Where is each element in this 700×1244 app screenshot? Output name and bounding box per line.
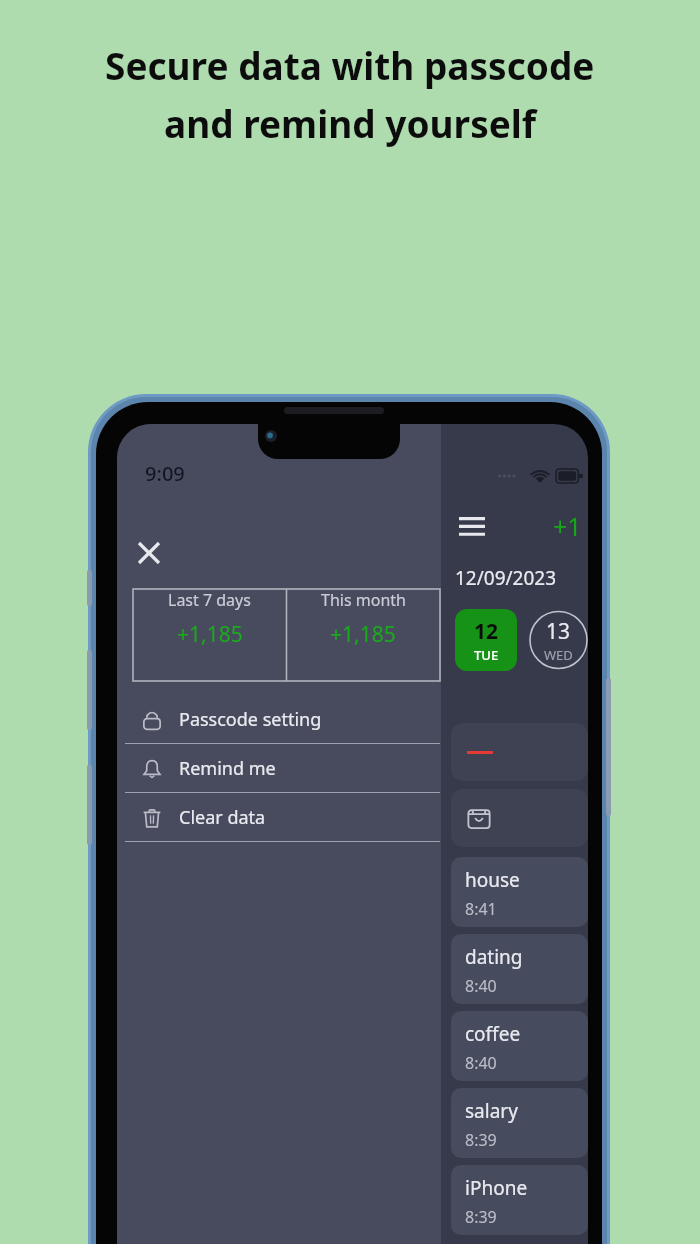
staticText: 12/09/2023 [455,565,557,591]
staticText: 13 [546,617,571,646]
staticText: 8:39 [465,1129,497,1151]
staticText: 8:40 [465,975,497,997]
staticText: Passcode setting [179,707,322,732]
button[interactable]: Remind me [117,744,441,792]
button[interactable]: 12 [455,609,517,671]
staticText: dating [465,944,523,970]
staticText: 9:09 [145,460,185,487]
button[interactable]: Category [451,789,588,847]
button[interactable] [451,723,588,781]
staticText: iPhone [465,1175,528,1201]
staticText: salary [465,1098,518,1124]
staticText: house [465,867,520,893]
staticText: +1,185 [177,620,243,649]
button[interactable]: 13 [529,609,588,671]
staticText: Remind me [179,756,276,781]
staticText: and remind yourself [164,98,537,148]
button[interactable]: This month [286,589,440,649]
button[interactable]: Menu [455,509,489,543]
staticText: TUE [474,646,499,664]
staticText: +1 [553,509,582,543]
staticText: WED [544,646,573,664]
staticText: +1,185 [330,620,396,649]
staticText: Clear data [179,805,266,830]
button[interactable]: house [451,857,588,927]
staticText: coffee [465,1021,521,1047]
button[interactable]: Clear data [117,793,441,841]
staticText: This month [321,589,406,611]
button[interactable]: dating [451,934,588,1004]
button[interactable]: Passcode setting [117,695,441,743]
button[interactable]: coffee [451,1011,588,1081]
staticText: 12 [474,617,499,646]
staticText: Secure data with passcode [105,40,595,90]
button[interactable]: iPhone [451,1165,588,1235]
button[interactable]: salary [451,1088,588,1158]
staticText: 8:39 [465,1206,497,1228]
staticText: 8:41 [465,898,497,920]
button[interactable]: Close [127,531,171,575]
staticText: Last 7 days [168,589,251,611]
staticText: 8:40 [465,1052,497,1074]
button[interactable]: Last 7 days [133,589,286,649]
